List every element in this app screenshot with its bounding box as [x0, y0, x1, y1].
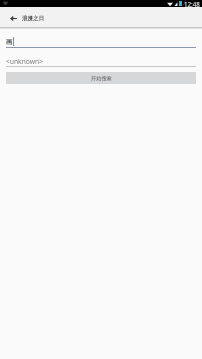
button[interactable]: Back	[0, 7, 22, 29]
staticText: 开始搜索	[91, 75, 112, 82]
staticText: <unknown>	[6, 57, 43, 66]
button[interactable]: 画	[6, 34, 196, 48]
button[interactable]: 开始搜索	[6, 72, 196, 84]
staticText: 画	[6, 38, 13, 46]
button[interactable]: <unknown>	[6, 54, 196, 67]
staticText: 12:48	[184, 0, 200, 7]
staticText: 浪漫之日	[22, 15, 44, 22]
